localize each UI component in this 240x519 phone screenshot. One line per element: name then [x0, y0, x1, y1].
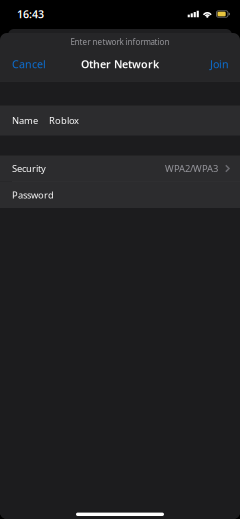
button[interactable]: Password	[0, 182, 240, 208]
button[interactable]: Security	[0, 155, 240, 181]
staticText: Join	[210, 57, 229, 71]
staticText: WPA2/WPA3	[165, 162, 218, 175]
staticText: Enter network information	[70, 37, 169, 47]
staticText: 16:43	[17, 7, 44, 21]
staticText: Password	[12, 189, 54, 201]
staticText: Other Network	[81, 57, 159, 71]
button[interactable]: Cancel	[0, 53, 58, 75]
button[interactable]: Join	[199, 53, 240, 75]
staticText: Cancel	[12, 57, 46, 71]
staticText: Security	[12, 162, 46, 175]
staticText: Roblox	[49, 114, 79, 127]
staticText: Name	[12, 114, 38, 127]
